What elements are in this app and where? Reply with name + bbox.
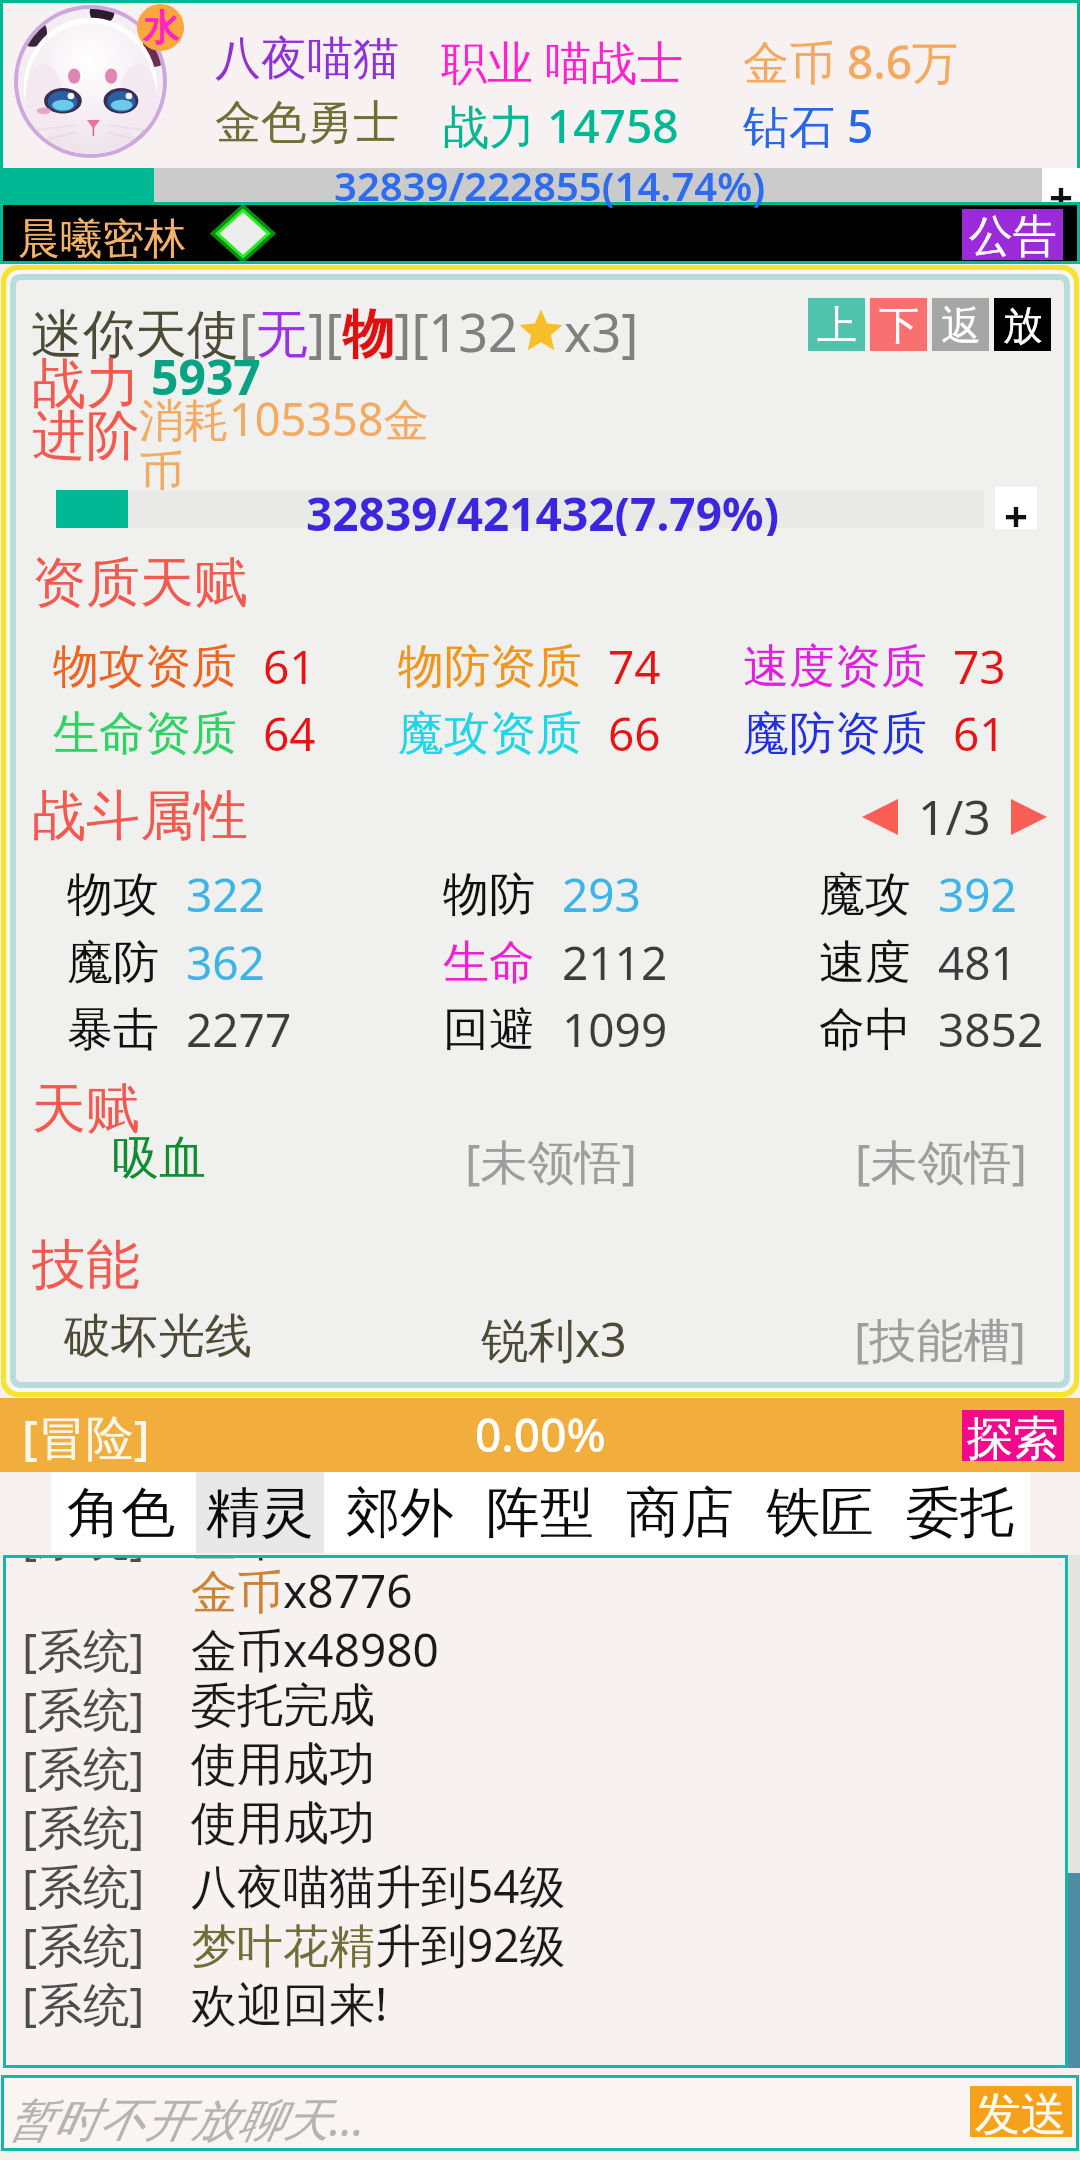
staticText: 回避 (443, 1001, 535, 1059)
staticText: 293 (562, 863, 641, 926)
staticText: 资质天赋 (32, 549, 248, 617)
staticText: 战力 14758 (443, 94, 679, 157)
staticText: 委托完成 (191, 1677, 375, 1735)
staticText: 委托 (906, 1479, 1014, 1547)
staticText: 5937 (151, 344, 261, 409)
staticText: 金色勇士 (215, 94, 399, 152)
staticText: 64 (263, 702, 316, 765)
button[interactable]: Previous page (856, 793, 904, 841)
staticText: 吸血 (112, 1129, 206, 1188)
staticText: 晨曦密林 (18, 213, 186, 266)
staticText: + (1049, 168, 1074, 202)
button[interactable]: 郊外 (330, 1472, 470, 1553)
staticText: 八夜喵猫 (215, 30, 399, 88)
staticText: 481 (938, 931, 1017, 994)
button[interactable]: 阵型 (470, 1472, 610, 1553)
staticText: 1099 (562, 998, 668, 1061)
staticText: 32839/222855(14.74%) (334, 158, 766, 212)
staticText: 1/3 (918, 784, 991, 849)
button[interactable]: 探索 (962, 1410, 1064, 1461)
staticText: 精灵 (206, 1479, 314, 1547)
staticText: 362 (186, 931, 265, 994)
staticText: [系统] (22, 1972, 145, 2035)
button[interactable]: Upgrade (995, 487, 1037, 529)
staticText: [系统] (22, 1795, 145, 1858)
staticText: 消耗105358金币 (139, 388, 439, 501)
staticText: 暂时不开放聊天... (7, 2087, 365, 2150)
button[interactable]: 返 (932, 298, 989, 351)
staticText: 74 (608, 635, 661, 698)
button[interactable]: 公告 (962, 209, 1063, 260)
staticText: 返 (941, 300, 981, 350)
button[interactable]: [冒险] (22, 1404, 150, 1470)
staticText: 魔攻资质 (398, 705, 582, 763)
staticText: 322 (186, 863, 265, 926)
staticText: 命中 (819, 1001, 911, 1059)
staticText: [未领悟] (465, 1129, 637, 1193)
button[interactable]: 精灵 (190, 1472, 330, 1553)
staticText: [冒险] (22, 1404, 150, 1470)
staticText: 物防资质 (398, 638, 582, 696)
button[interactable]: 铁匠 (750, 1472, 890, 1553)
staticText: [系统] (22, 1736, 145, 1799)
staticText: 速度资质 (743, 638, 927, 696)
staticText: 73 (953, 635, 1006, 698)
staticText: 使用成功 (191, 1795, 375, 1853)
staticText: 暴击 (67, 1001, 159, 1059)
staticText: 物防 (443, 866, 535, 924)
staticText: [系统] (22, 1677, 145, 1740)
staticText: 392 (938, 863, 1017, 926)
staticText: 金币x8776 (191, 1555, 413, 1569)
button[interactable]: 商店 (610, 1472, 750, 1553)
button[interactable]: Add experience (1042, 168, 1080, 202)
staticText: 放 (1003, 300, 1043, 350)
staticText: x3] (564, 296, 639, 367)
staticText: 32839/421432(7.79%) (306, 482, 780, 536)
staticText: 破坏光线 (64, 1307, 252, 1366)
staticText: 金币 8.6万 (743, 30, 959, 93)
staticText: 物攻资质 (53, 638, 237, 696)
staticText: 公告 (969, 209, 1057, 260)
button[interactable]: 发送 (970, 2086, 1072, 2137)
staticText: [系统] (22, 1913, 145, 1976)
staticText: [系统] (22, 1555, 145, 1569)
staticText: 发送 (975, 2086, 1067, 2137)
staticText: 角色 (67, 1479, 175, 1547)
staticText: [系统] (22, 1618, 145, 1681)
button[interactable]: 委托 (890, 1472, 1030, 1553)
staticText: 职业 喵战士 (441, 30, 683, 93)
staticText: 水 (143, 5, 179, 50)
staticText: 2112 (562, 931, 668, 994)
staticText: 铁匠 (766, 1479, 874, 1547)
button[interactable]: 角色 (51, 1472, 190, 1553)
staticText: 迷你天使[无][物][132 (31, 296, 518, 367)
button[interactable]: Avatar (14, 5, 167, 158)
button[interactable]: Next page (1005, 793, 1053, 841)
staticText: 梦叶花精升到92级 (191, 1913, 566, 1976)
button[interactable]: 放 (994, 298, 1051, 351)
staticText: 欢迎回来! (191, 1972, 388, 2035)
button[interactable]: 上 (808, 298, 865, 351)
staticText: 61 (953, 702, 1006, 765)
staticText: 魔防资质 (743, 705, 927, 763)
staticText: 使用成功 (191, 1736, 375, 1794)
staticText: + (1004, 487, 1029, 529)
staticText: [系统] (22, 1854, 145, 1917)
staticText: 下 (879, 300, 919, 350)
button[interactable]: 下 (870, 298, 927, 351)
staticText: 钻石 5 (743, 94, 874, 157)
staticText: 探索 (967, 1410, 1059, 1461)
staticText: 66 (608, 702, 661, 765)
staticText: 天赋 (32, 1075, 140, 1143)
staticText: 速度 (819, 934, 911, 992)
staticText: 战力 (32, 350, 140, 418)
staticText: 锐利x3 (481, 1307, 627, 1371)
staticText: 进阶 (32, 402, 140, 470)
staticText: [技能槽] (854, 1307, 1026, 1371)
staticText: 金币x48980 (191, 1618, 439, 1681)
staticText: [未领悟] (855, 1129, 1027, 1193)
staticText: 生命 (443, 934, 535, 992)
staticText: 61 (263, 635, 316, 698)
staticText: 商店 (626, 1479, 734, 1547)
staticText: 魔防 (67, 934, 159, 992)
